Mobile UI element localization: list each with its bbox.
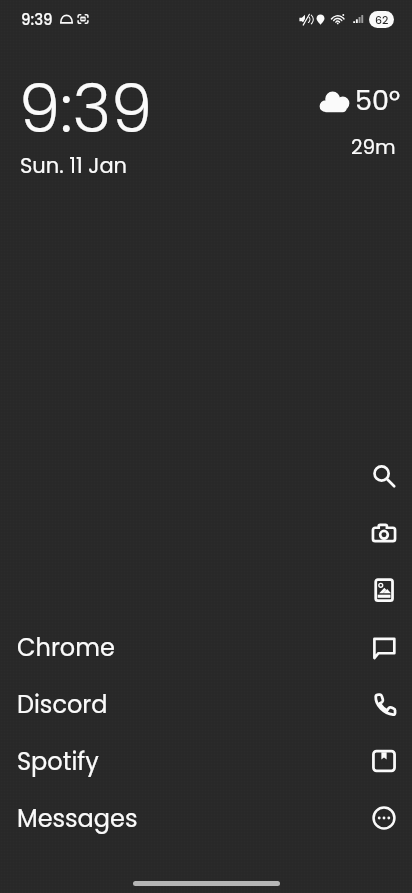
staticText: Spotify (17, 745, 99, 779)
button[interactable]: Sun. 11 Jan (20, 151, 128, 180)
button[interactable]: 29m (351, 133, 396, 161)
button[interactable]: Photos (355, 561, 412, 618)
staticText: Messages (17, 802, 138, 836)
button[interactable]: 9:39 (19, 63, 153, 155)
button[interactable]: Phone (355, 675, 412, 732)
staticText: 9:39 (19, 63, 153, 155)
button[interactable]: Chrome (17, 619, 207, 676)
staticText: Discord (17, 688, 108, 722)
staticText: 62 (375, 12, 389, 27)
staticText: 50° (355, 82, 400, 120)
staticText: 9:39 (21, 9, 53, 30)
staticText: Sun. 11 Jan (20, 151, 128, 180)
button[interactable]: Books (355, 732, 412, 789)
button[interactable]: Messages (355, 618, 412, 675)
button[interactable]: Discord (17, 676, 207, 733)
staticText: Chrome (17, 631, 115, 665)
button[interactable]: Spotify (17, 733, 207, 790)
button[interactable]: Camera (355, 504, 412, 561)
button[interactable]: More options (355, 789, 412, 846)
button[interactable]: Search (355, 447, 412, 504)
staticText: 29m (351, 133, 396, 161)
button[interactable]: 50° (319, 82, 400, 120)
button[interactable]: Messages (17, 790, 207, 847)
